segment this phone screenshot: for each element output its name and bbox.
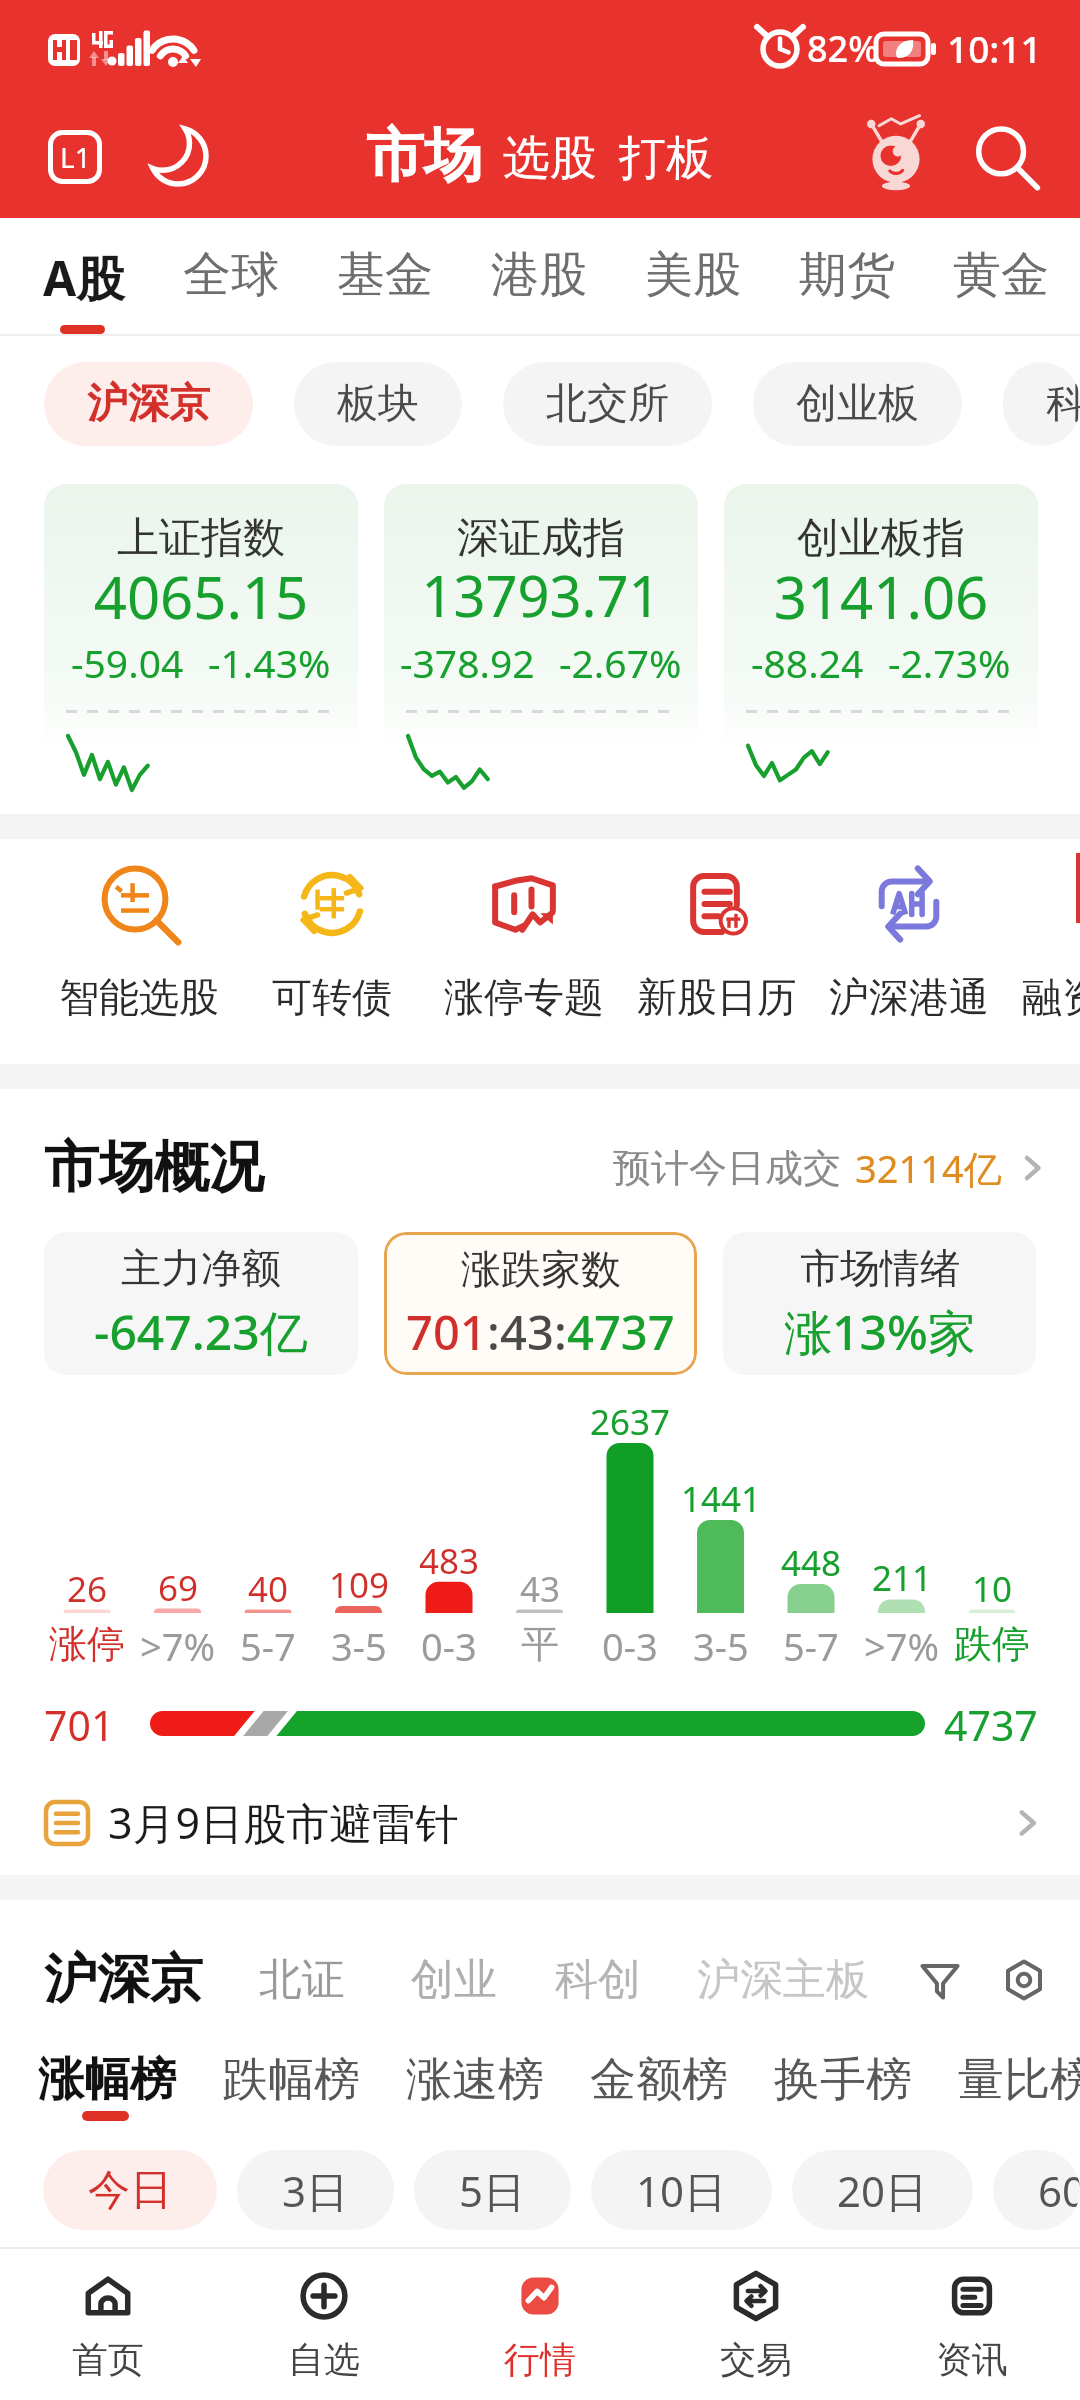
staticText: 平 (521, 1620, 559, 1668)
button[interactable]: 创业板 (753, 362, 962, 446)
staticText: 预计今日成交 (613, 1144, 841, 1192)
staticText: 涨幅榜 (38, 2051, 175, 2109)
button[interactable]: 全球 (183, 218, 279, 336)
button[interactable]: 板块 (294, 362, 462, 446)
button[interactable]: 上证指数 (44, 484, 358, 814)
button[interactable]: 首页 (0, 2249, 216, 2400)
staticText: 2637 (590, 1398, 671, 1446)
staticText: 10 (972, 1565, 1013, 1613)
button[interactable]: 主力净额 (44, 1232, 358, 1375)
button[interactable]: 港股 (491, 218, 587, 336)
button[interactable]: 行情 (432, 2249, 648, 2400)
button[interactable]: 10日 (591, 2150, 772, 2230)
button[interactable]: 资讯 (864, 2249, 1080, 2400)
staticText: 涨跌家数 (461, 1244, 621, 1294)
button[interactable]: 交易 (648, 2249, 864, 2400)
button[interactable]: 市场 (366, 119, 482, 192)
button[interactable]: 预计今日成交 (613, 1142, 1050, 1194)
staticText: 创业板 (796, 378, 919, 430)
staticText: 跌幅榜 (222, 2051, 359, 2109)
staticText: 深证成指 (384, 512, 698, 565)
button[interactable]: 科创板 (1003, 362, 1080, 446)
staticText: L1 (60, 138, 91, 176)
button[interactable]: 自选 (216, 2249, 432, 2400)
button[interactable]: 涨跌家数 (384, 1232, 697, 1375)
button[interactable]: 北交所 (503, 362, 712, 446)
button[interactable]: 科创 (555, 1953, 641, 2007)
button[interactable]: 美股 (645, 218, 741, 336)
staticText: 4737 (567, 1300, 675, 1364)
staticText: 涨13%家 (784, 1299, 976, 1365)
button[interactable]: 涨停专题 (428, 839, 620, 1064)
staticText: 新股日历 (621, 972, 813, 1022)
staticText: 跌停 (954, 1620, 1030, 1668)
button[interactable]: 今日 (43, 2150, 217, 2230)
button[interactable]: Search (968, 119, 1044, 195)
staticText: 北交所 (546, 378, 669, 430)
staticText: 3日 (282, 2162, 349, 2219)
button[interactable]: 涨速榜 (406, 2051, 543, 2109)
button[interactable]: 市场情绪 (723, 1232, 1036, 1375)
button[interactable]: 选股 (503, 133, 597, 192)
staticText: 109 (329, 1561, 390, 1609)
staticText: 港股 (491, 245, 587, 305)
button[interactable]: Night mode (140, 118, 216, 194)
staticText: 43 (520, 1565, 561, 1613)
staticText: -59.04 (71, 636, 184, 689)
staticText: 沪深京 (87, 378, 210, 430)
button[interactable]: Level-1 quotes (40, 122, 110, 192)
button[interactable]: 新股日历 (621, 839, 813, 1064)
staticText: 701 (406, 1300, 487, 1364)
button[interactable]: 打板 (619, 133, 713, 192)
button[interactable]: A股 (43, 218, 125, 336)
staticText: 智能选股 (43, 972, 235, 1022)
button[interactable]: 融资融券 (1006, 839, 1080, 1064)
button[interactable]: Filter (918, 1958, 962, 2002)
button[interactable]: AI assistant (856, 117, 936, 197)
button[interactable]: 北证 (259, 1953, 345, 2007)
button[interactable]: 3日 (237, 2150, 394, 2230)
staticText: 26 (67, 1565, 108, 1613)
button[interactable]: 跌幅榜 (222, 2051, 359, 2109)
button[interactable]: 可转债 (236, 839, 428, 1064)
staticText: 涨速榜 (406, 2051, 543, 2109)
button[interactable]: 金额榜 (590, 2051, 727, 2109)
staticText: 资讯 (936, 2337, 1008, 2382)
staticText: 4737 (944, 1697, 1038, 1753)
button[interactable]: 创业板指 (724, 484, 1038, 814)
staticText: 换手榜 (774, 2051, 911, 2109)
button[interactable]: 沪深京 (44, 362, 253, 446)
staticText: 69 (158, 1564, 199, 1612)
staticText: 上证指数 (44, 512, 358, 565)
staticText: 主力净额 (121, 1243, 281, 1293)
button[interactable]: 沪深京 (44, 1946, 203, 2013)
staticText: 483 (419, 1537, 480, 1585)
button[interactable]: 沪深港通 (813, 839, 1005, 1064)
button[interactable]: 3月9日股市避雷针 (0, 1770, 1080, 1875)
staticText: : (487, 1300, 500, 1364)
button[interactable]: 5日 (414, 2150, 571, 2230)
staticText: 交易 (720, 2337, 792, 2382)
button[interactable]: 量比榜 (958, 2051, 1080, 2109)
staticText: -647.23亿 (94, 1299, 308, 1365)
button[interactable]: 涨幅榜 (38, 2051, 175, 2109)
staticText: 5-7 (240, 1620, 296, 1672)
staticText: 自选 (288, 2337, 360, 2382)
button[interactable]: 黄金 (953, 218, 1049, 336)
staticText: 市场概况 (44, 1133, 264, 1202)
button[interactable]: 深证成指 (384, 484, 698, 814)
staticText: 3141.06 (724, 557, 1038, 636)
button[interactable]: 60日 (993, 2150, 1080, 2230)
button[interactable]: 20日 (792, 2150, 973, 2230)
staticText: -88.24 (751, 636, 864, 689)
staticText: 82% (807, 24, 879, 73)
staticText: 3-5 (331, 1620, 387, 1672)
button[interactable]: 智能选股 (43, 839, 235, 1064)
staticText: >7% (140, 1620, 216, 1672)
button[interactable]: 创业 (411, 1953, 497, 2007)
button[interactable]: Settings (1002, 1958, 1046, 2002)
button[interactable]: 换手榜 (774, 2051, 911, 2109)
button[interactable]: 基金 (337, 218, 433, 336)
button[interactable]: 沪深主板 (697, 1953, 845, 2007)
button[interactable]: 期货 (799, 218, 895, 336)
